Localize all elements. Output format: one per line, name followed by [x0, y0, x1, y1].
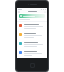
other: Item icon — [19, 33, 22, 36]
button[interactable]: Item icon — [17, 49, 47, 58]
button[interactable]: Home — [30, 63, 35, 68]
button[interactable]: Item icon — [17, 22, 47, 31]
button[interactable]: Item icon — [17, 31, 47, 40]
button[interactable] — [27, 10, 38, 13]
other: Item icon — [19, 24, 22, 27]
button[interactable]: Item icon — [17, 40, 47, 49]
other: Item icon — [19, 51, 22, 54]
button[interactable] — [19, 14, 45, 18]
other: Item icon — [19, 42, 22, 45]
